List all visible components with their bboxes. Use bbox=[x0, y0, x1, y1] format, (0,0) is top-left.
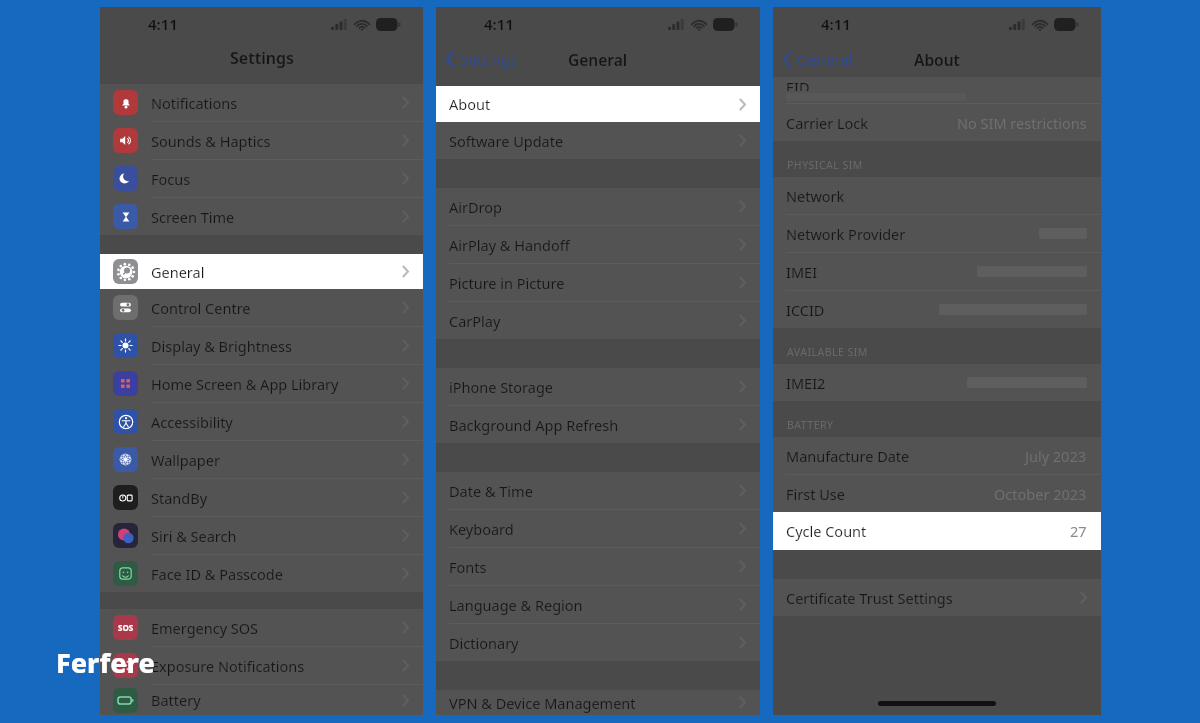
staticText: Notifications bbox=[151, 93, 238, 113]
staticText: Picture in Picture bbox=[449, 273, 565, 293]
staticText: Sounds & Haptics bbox=[151, 131, 271, 151]
button[interactable]: Manufacture Date bbox=[773, 437, 1101, 475]
staticText: AirDrop bbox=[449, 197, 502, 217]
button[interactable]: About bbox=[436, 86, 760, 122]
button[interactable]: AirPlay & Handoff bbox=[436, 226, 760, 264]
button[interactable]: IMEI2 bbox=[773, 364, 1101, 401]
staticText: Display & Brightness bbox=[151, 336, 292, 356]
staticText: Face ID & Passcode bbox=[151, 564, 283, 584]
button[interactable]: Screen Time bbox=[100, 198, 423, 235]
staticText: About bbox=[914, 49, 960, 70]
staticText: Software Update bbox=[449, 131, 564, 151]
button[interactable]: SOS bbox=[100, 609, 423, 647]
staticText: AirPlay & Handoff bbox=[449, 235, 570, 255]
button[interactable]: Software Update bbox=[436, 122, 760, 159]
staticText: IMEI2 bbox=[786, 373, 826, 393]
button[interactable]: Battery bbox=[100, 685, 423, 715]
staticText: BATTERY bbox=[787, 418, 834, 432]
staticText: Manufacture Date bbox=[786, 446, 910, 466]
button[interactable]: Certificate Trust Settings bbox=[773, 579, 1101, 616]
button[interactable]: CarPlay bbox=[436, 302, 760, 339]
staticText: Background App Refresh bbox=[449, 415, 619, 435]
button[interactable]: Face ID & Passcode bbox=[100, 555, 423, 592]
staticText: Emergency SOS bbox=[151, 618, 259, 638]
staticText: Accessibility bbox=[151, 412, 233, 432]
button[interactable]: Sounds & Haptics bbox=[100, 122, 423, 160]
button[interactable]: Dictionary bbox=[436, 624, 760, 661]
button[interactable]: VPN & Device Management bbox=[436, 690, 760, 715]
button[interactable]: First Use bbox=[773, 475, 1101, 512]
button[interactable]: AirDrop bbox=[436, 188, 760, 226]
staticText: Network bbox=[786, 186, 845, 206]
staticText: Date & Time bbox=[449, 481, 533, 501]
staticText: EID bbox=[786, 77, 810, 91]
button[interactable]: Language & Region bbox=[436, 586, 760, 624]
staticText: Focus bbox=[151, 169, 191, 189]
button[interactable]: General bbox=[100, 254, 423, 289]
staticText: No SIM restrictions bbox=[957, 113, 1087, 133]
other: Back bbox=[782, 51, 792, 68]
button[interactable]: Exposure Notifications bbox=[100, 647, 423, 685]
staticText: Certificate Trust Settings bbox=[786, 588, 953, 608]
staticText: General bbox=[797, 49, 853, 69]
staticText: AVAILABLE SIM bbox=[787, 345, 868, 359]
staticText: StandBy bbox=[151, 488, 208, 508]
staticText: October 2023 bbox=[994, 484, 1087, 504]
staticText: SOS bbox=[118, 622, 134, 633]
staticText: Carrier Lock bbox=[786, 113, 869, 133]
staticText: Cycle Count bbox=[786, 521, 867, 541]
staticText: Exposure Notifications bbox=[151, 656, 305, 676]
staticText: Network Provider bbox=[786, 224, 906, 244]
staticText: IMEI bbox=[786, 262, 818, 282]
staticText: Fonts bbox=[449, 557, 487, 577]
staticText: Settings bbox=[460, 49, 518, 69]
button[interactable]: Date & Time bbox=[436, 472, 760, 510]
button[interactable]: Control Centre bbox=[100, 289, 423, 327]
button[interactable]: iPhone Storage bbox=[436, 368, 760, 406]
button[interactable]: Background App Refresh bbox=[436, 406, 760, 443]
staticText: 4:11 bbox=[484, 14, 514, 34]
staticText: Dictionary bbox=[449, 633, 519, 653]
button[interactable]: Back bbox=[773, 44, 861, 74]
button[interactable]: Accessibility bbox=[100, 403, 423, 441]
button[interactable]: Network bbox=[773, 177, 1101, 215]
staticText: Wallpaper bbox=[151, 450, 220, 470]
button[interactable]: StandBy bbox=[100, 479, 423, 517]
staticText: Ferfere bbox=[56, 644, 155, 681]
button[interactable]: Picture in Picture bbox=[436, 264, 760, 302]
button[interactable]: ICCID bbox=[773, 291, 1101, 328]
button[interactable]: Fonts bbox=[436, 548, 760, 586]
staticText: Home Screen & App Library bbox=[151, 374, 339, 394]
button[interactable]: Cycle Count bbox=[773, 512, 1101, 550]
button[interactable]: IMEI bbox=[773, 253, 1101, 291]
button[interactable]: Home Screen & App Library bbox=[100, 365, 423, 403]
staticText: 4:11 bbox=[821, 14, 851, 34]
staticText: ICCID bbox=[786, 300, 825, 320]
staticText: Control Centre bbox=[151, 298, 251, 318]
staticText: About bbox=[449, 94, 491, 114]
staticText: 27 bbox=[1070, 521, 1087, 541]
staticText: iPhone Storage bbox=[449, 377, 554, 397]
staticText: PHYSICAL SIM bbox=[787, 158, 863, 172]
staticText: Battery bbox=[151, 690, 201, 710]
staticText: 4:11 bbox=[148, 14, 178, 34]
button[interactable]: Network Provider bbox=[773, 215, 1101, 253]
button[interactable]: Wallpaper bbox=[100, 441, 423, 479]
staticText: Siri & Search bbox=[151, 526, 237, 546]
staticText: CarPlay bbox=[449, 311, 501, 331]
button[interactable]: Display & Brightness bbox=[100, 327, 423, 365]
button[interactable]: Focus bbox=[100, 160, 423, 198]
button[interactable]: Notifications bbox=[100, 84, 423, 122]
button[interactable]: Keyboard bbox=[436, 510, 760, 548]
button[interactable]: Carrier Lock bbox=[773, 104, 1101, 141]
staticText: Keyboard bbox=[449, 519, 514, 539]
staticText: July 2023 bbox=[1025, 446, 1087, 466]
staticText: General bbox=[568, 49, 628, 70]
staticText: First Use bbox=[786, 484, 845, 504]
staticText: Screen Time bbox=[151, 207, 235, 227]
staticText: General bbox=[151, 262, 205, 282]
button[interactable]: Siri & Search bbox=[100, 517, 423, 555]
staticText: VPN & Device Management bbox=[449, 693, 636, 713]
staticText: Settings bbox=[230, 47, 294, 69]
button[interactable]: Back bbox=[436, 44, 526, 74]
